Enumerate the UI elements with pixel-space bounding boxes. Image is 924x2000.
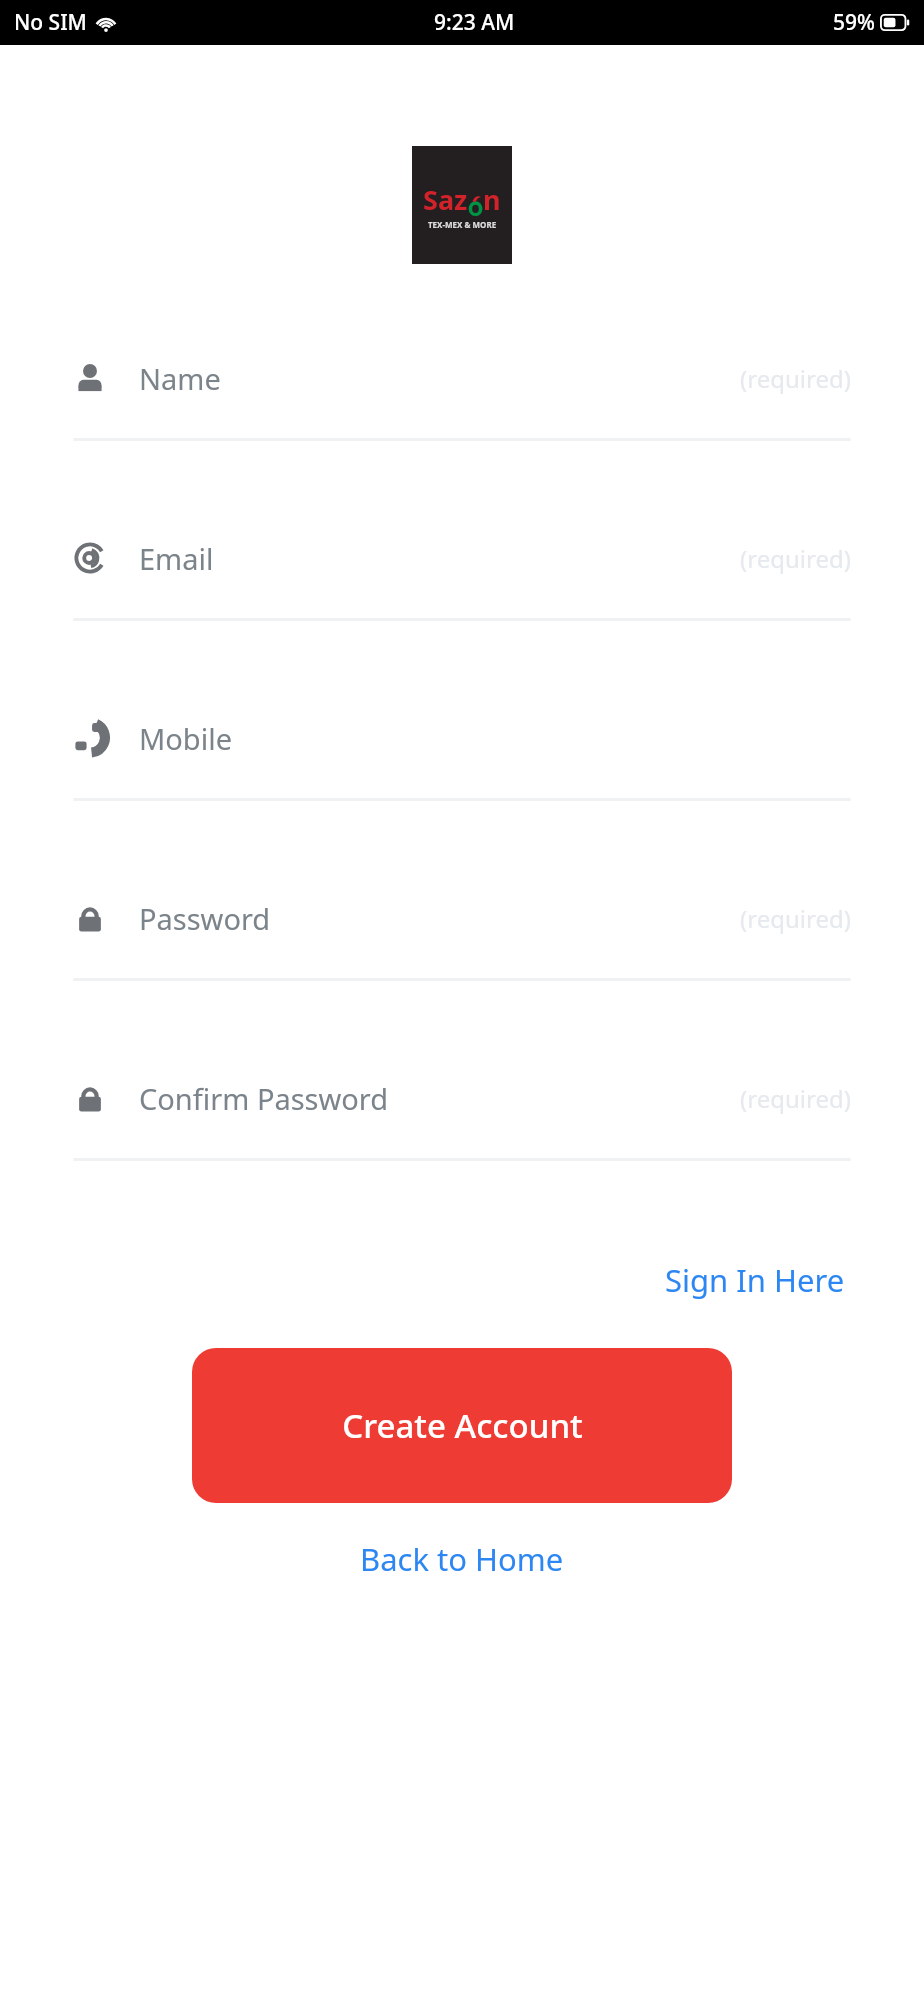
button[interactable]: Sign In Here (659, 1251, 851, 1309)
staticText: (required) (740, 362, 851, 395)
staticText: Saz (423, 181, 468, 218)
staticText: Name (139, 359, 221, 398)
staticText: Password (139, 899, 271, 938)
staticText: TEX-MEX & MORE (428, 219, 497, 230)
staticText: Sign In Here (665, 1259, 845, 1301)
button[interactable]: Back to Home (344, 1528, 580, 1590)
staticText: Email (139, 539, 214, 578)
staticText: 9:23 AM (434, 8, 515, 37)
staticText: Confirm Password (139, 1079, 389, 1118)
staticText: (required) (740, 542, 851, 575)
staticText: 59% (833, 8, 875, 37)
button[interactable]: Confirm Password (0, 1038, 924, 1218)
button[interactable]: Create Account (192, 1348, 732, 1503)
button[interactable]: Password (0, 858, 924, 1038)
staticText: Back to Home (360, 1538, 564, 1580)
staticText: Create Account (342, 1403, 583, 1448)
button[interactable]: Name (0, 318, 924, 498)
staticText: (required) (740, 902, 851, 935)
staticText: Mobile (139, 719, 233, 758)
staticText: No SIM (14, 8, 87, 37)
button[interactable]: Mobile (0, 678, 924, 858)
button[interactable]: Email (0, 498, 924, 678)
staticText: (required) (740, 1082, 851, 1115)
staticText: n (483, 181, 501, 218)
